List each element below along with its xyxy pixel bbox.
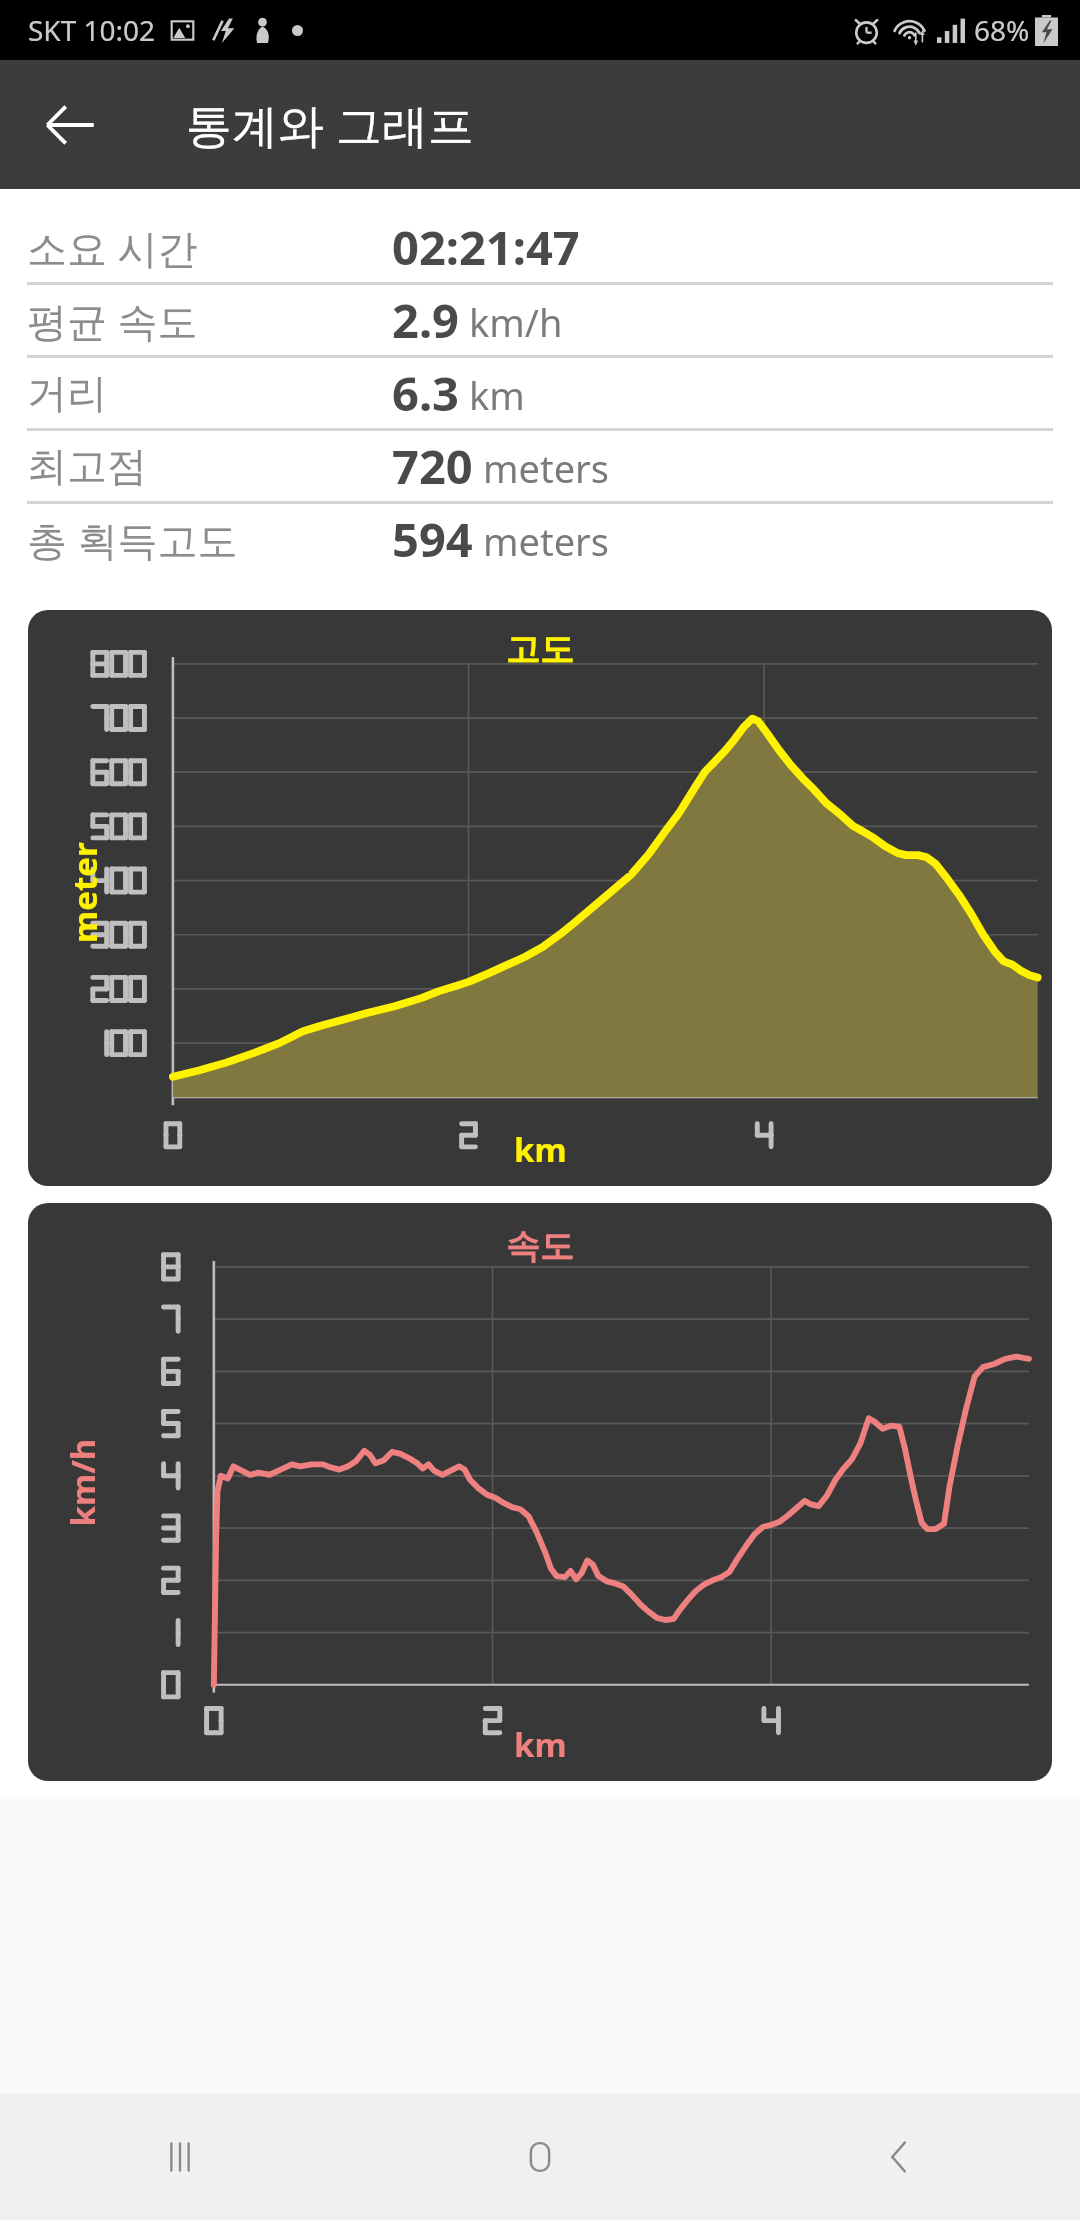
staticText: 2.9 (392, 288, 459, 352)
staticText: km (514, 1127, 567, 1172)
button[interactable]: 평균 속도 (0, 285, 1080, 355)
staticText: km/h (59, 1438, 104, 1526)
staticText: 720 (392, 434, 473, 498)
button[interactable]: 총 획득고도 (0, 504, 1080, 574)
button[interactable]: 고도 (28, 610, 1052, 1186)
button[interactable]: 최고점 (0, 431, 1080, 501)
staticText: 최고점 (27, 441, 147, 491)
staticText: 소요 시간 (27, 220, 198, 275)
button[interactable]: Back (720, 2093, 1080, 2220)
staticText: 02:21:47 (392, 215, 580, 279)
staticText: 통계와 그래프 (186, 93, 474, 156)
staticText: 6.3 (392, 361, 459, 425)
button[interactable]: 소요 시간 (0, 212, 1080, 282)
staticText: 속도 (506, 1225, 574, 1268)
button[interactable]: 거리 (0, 358, 1080, 428)
staticText: 594 (392, 507, 473, 571)
staticText: 68% (974, 11, 1030, 49)
staticText: meters (483, 515, 610, 567)
staticText: km/h (469, 296, 563, 348)
staticText: meter (62, 842, 107, 943)
staticText: km (514, 1722, 567, 1767)
button[interactable]: Back (24, 79, 116, 171)
staticText: 평균 속도 (27, 293, 198, 348)
button[interactable]: 속도 (28, 1203, 1052, 1781)
staticText: meters (483, 442, 610, 494)
staticText: km (469, 369, 525, 421)
staticText: SKT 10:02 (28, 11, 156, 49)
button[interactable]: Home (360, 2093, 720, 2220)
staticText: 총 획득고도 (27, 512, 238, 567)
staticText: 거리 (27, 368, 107, 418)
staticText: 고도 (506, 628, 574, 671)
button[interactable]: Recent apps (0, 2093, 360, 2220)
